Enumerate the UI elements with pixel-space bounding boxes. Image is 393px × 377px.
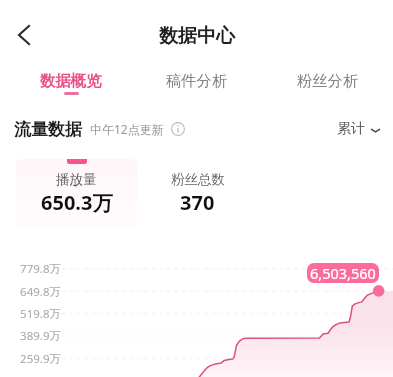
button[interactable]: 6,503,560	[307, 263, 379, 283]
staticText: 稿件分析	[166, 71, 228, 90]
button[interactable]: 数据概览	[11, 61, 131, 102]
staticText: 播放量	[56, 171, 97, 188]
button[interactable]: 粉丝分析	[268, 61, 388, 102]
staticText: 519.8万	[20, 306, 61, 322]
staticText: 370	[180, 189, 215, 216]
button[interactable]: 累计	[337, 120, 380, 138]
staticText: 粉丝分析	[297, 71, 359, 90]
staticText: 数据概览	[40, 71, 102, 90]
staticText: 粉丝总数	[171, 171, 225, 188]
staticText: 649.8万	[20, 284, 61, 300]
staticText: 389.9万	[20, 328, 61, 344]
staticText: 259.9万	[20, 351, 61, 367]
staticText: 累计	[337, 120, 365, 138]
staticText: 流量数据	[14, 119, 82, 140]
button[interactable]: 稿件分析	[137, 61, 257, 102]
staticText: 6,503,560	[310, 263, 376, 283]
staticText: 中午12点更新	[90, 121, 164, 137]
button[interactable]: 粉丝总数	[137, 159, 258, 228]
button[interactable]: Info	[171, 122, 185, 136]
staticText: 650.3万	[41, 189, 113, 216]
button[interactable]: 播放量	[16, 159, 137, 228]
button[interactable]: Back	[2, 13, 46, 57]
staticText: 数据中心	[159, 24, 235, 48]
staticText: 779.8万	[20, 261, 61, 277]
